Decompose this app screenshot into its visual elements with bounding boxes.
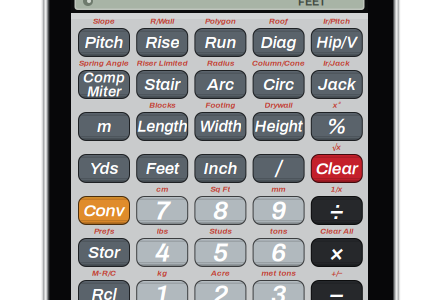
button[interactable]: Inch (194, 154, 246, 183)
staticText: m (97, 117, 111, 135)
staticText: 3 (271, 280, 286, 300)
staticText: Arc (207, 75, 234, 93)
button[interactable]: Jack (311, 70, 363, 99)
staticText: 8 (213, 196, 228, 225)
button[interactable]: – (311, 280, 363, 300)
button[interactable]: Conv (78, 196, 130, 225)
staticText: Clear (316, 159, 358, 178)
staticText: Studs (209, 227, 231, 235)
staticText: Spring Angle (79, 59, 129, 67)
staticText: 4 (155, 238, 170, 267)
staticText: Slope (93, 17, 115, 25)
button[interactable]: 1 (136, 280, 188, 300)
staticText: Riser Limited (137, 59, 188, 67)
staticText: 9 (271, 196, 286, 225)
button[interactable]: Stair (136, 70, 188, 99)
button[interactable]: Diag (253, 28, 305, 57)
staticText: cm (156, 185, 168, 193)
staticText: M-R/C (92, 269, 116, 277)
staticText: ÷ (329, 197, 345, 224)
staticText: met tons (262, 269, 296, 277)
staticText: Pitch (84, 33, 123, 51)
staticText: Conv (83, 201, 124, 220)
button[interactable]: 7 (136, 196, 188, 225)
staticText: Rcl (91, 285, 116, 300)
staticText: 2 (213, 280, 228, 300)
button[interactable]: 5 (194, 238, 246, 267)
staticText: Ir/Pitch (323, 17, 350, 25)
button[interactable]: Feet (136, 154, 188, 183)
button[interactable]: Yds (78, 154, 130, 183)
staticText: Drywall (265, 101, 293, 109)
button[interactable]: % (311, 112, 363, 141)
button[interactable]: m (78, 112, 130, 141)
staticText: Height (255, 118, 303, 135)
button[interactable]: Run (194, 28, 246, 57)
button[interactable]: Circ (253, 70, 305, 99)
button[interactable]: / (253, 154, 305, 183)
staticText: × (329, 239, 345, 266)
button[interactable]: Rcl (78, 280, 130, 300)
staticText: Miter (87, 83, 121, 99)
staticText: mm (272, 185, 286, 193)
staticText: Roof (269, 17, 288, 25)
staticText: +/– (331, 269, 342, 277)
staticText: Inch (203, 159, 237, 177)
button[interactable]: Height (253, 112, 305, 141)
button[interactable]: Clear (311, 154, 363, 183)
staticText: 1 (155, 280, 170, 300)
staticText: Run (204, 33, 236, 51)
button[interactable]: Arc (194, 70, 246, 99)
button[interactable]: Comp (78, 70, 130, 99)
staticText: Yds (89, 159, 118, 177)
button[interactable]: × (311, 238, 363, 267)
staticText: Acre (211, 269, 230, 277)
staticText: Feet (146, 159, 179, 177)
staticText: x² (333, 101, 341, 109)
button[interactable]: Rise (136, 28, 188, 57)
staticText: 6 (271, 238, 286, 267)
staticText: / (276, 157, 282, 180)
button[interactable]: Length (136, 112, 188, 141)
staticText: Column/Cone (252, 59, 305, 67)
staticText: Circ (263, 75, 294, 93)
button[interactable]: 8 (194, 196, 246, 225)
button[interactable]: ÷ (311, 196, 363, 225)
button[interactable]: 9 (253, 196, 305, 225)
staticText: Sq Ft (210, 185, 230, 193)
button[interactable]: 2 (194, 280, 246, 300)
staticText: Width (199, 118, 241, 135)
staticText: Diag (261, 33, 297, 51)
staticText: Rise (145, 33, 179, 51)
staticText: tons (270, 227, 287, 235)
staticText: Prefs (94, 227, 114, 235)
staticText: % (326, 115, 347, 138)
button[interactable]: Width (194, 112, 246, 141)
button[interactable]: Pitch (78, 28, 130, 57)
staticText: Polygon (205, 17, 236, 25)
button[interactable]: 6 (253, 238, 305, 267)
button[interactable]: Hip/V (311, 28, 363, 57)
staticText: Ir/Jack (323, 59, 350, 67)
staticText: Stor (88, 243, 120, 261)
staticText: R/Wall (150, 17, 174, 25)
staticText: Blocks (149, 101, 175, 109)
staticText: Jack (318, 75, 356, 93)
staticText: – (330, 281, 343, 300)
button[interactable]: 4 (136, 238, 188, 267)
button[interactable]: 3 (253, 280, 305, 300)
staticText: Length (137, 118, 187, 135)
staticText: Comp (83, 69, 125, 85)
staticText: 7 (155, 196, 170, 225)
staticText: kg (157, 269, 167, 277)
staticText: FEET (298, 0, 326, 8)
staticText: 1/x (331, 185, 343, 193)
staticText: √x (332, 143, 341, 151)
staticText: Clear All (320, 227, 353, 235)
staticText: Hip/V (316, 34, 357, 51)
staticText: Stair (144, 75, 180, 93)
button[interactable]: Stor (78, 238, 130, 267)
staticText: 5 (213, 238, 228, 267)
staticText: lbs (157, 227, 168, 235)
staticText: Radius (207, 59, 234, 67)
